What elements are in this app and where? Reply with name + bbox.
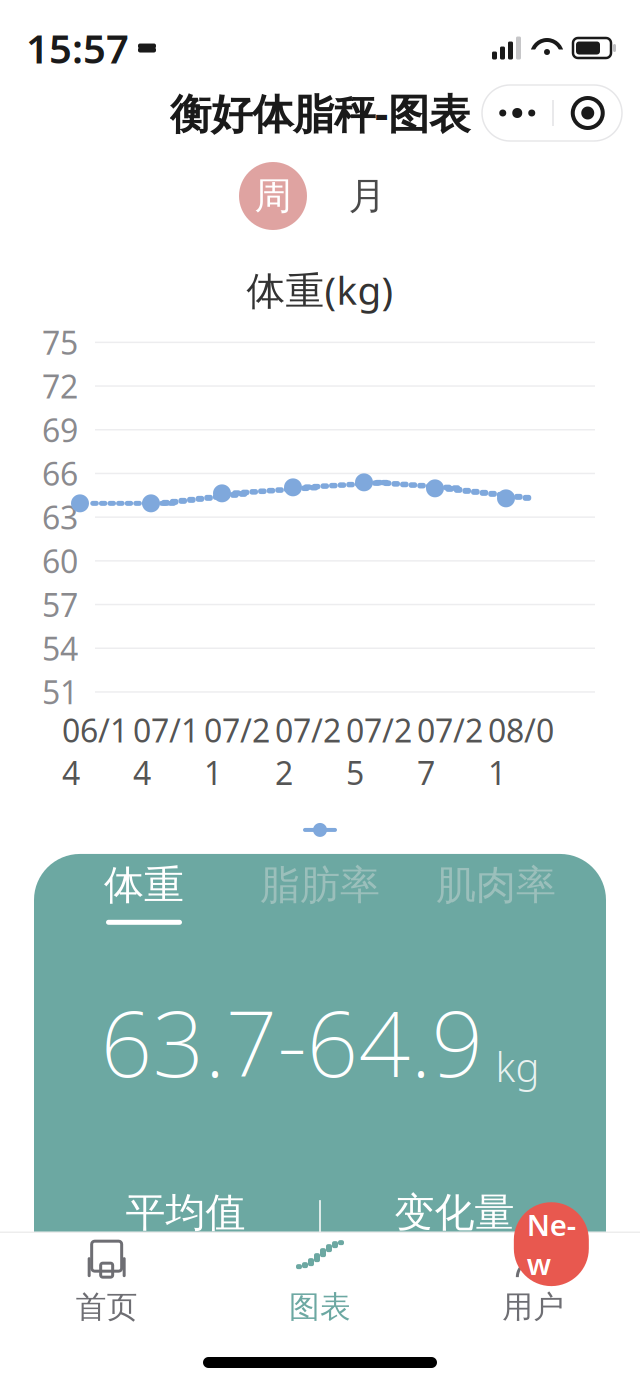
staticText: 07/14	[133, 709, 199, 794]
staticText: 月	[348, 173, 385, 219]
button[interactable]: 月	[333, 162, 401, 230]
staticText: 63	[42, 496, 78, 538]
button[interactable]: 脂肪率	[232, 862, 408, 924]
staticText: 用户	[502, 1288, 564, 1326]
staticText: 周	[254, 173, 291, 219]
staticText: New	[527, 1205, 576, 1283]
staticText: 75	[42, 321, 78, 364]
staticText: 66	[42, 452, 78, 495]
staticText: 63.7-64.9	[100, 982, 483, 1102]
staticText: 体重(kg)	[246, 264, 393, 315]
staticText: 60	[42, 540, 78, 582]
staticText: +0.35kg	[377, 1249, 531, 1304]
staticText: 变化量	[394, 1188, 514, 1237]
staticText: 体重	[104, 861, 184, 910]
button[interactable]: 周	[239, 162, 307, 230]
button[interactable]: 肌肉率	[408, 862, 584, 924]
staticText: 51	[42, 671, 78, 713]
button[interactable]: New	[427, 1233, 640, 1329]
staticText: kg	[495, 1040, 539, 1093]
staticText: 54	[42, 627, 78, 669]
staticText: 69	[42, 408, 78, 451]
button[interactable]: 体重	[56, 862, 232, 924]
staticText: 衡好体脂秤-图表	[170, 86, 470, 140]
staticText: 07/27	[417, 709, 483, 794]
button[interactable]: 胶囊按钮	[554, 85, 622, 141]
staticText: 肌肉率	[436, 861, 556, 910]
staticText: 脂肪率	[260, 861, 380, 910]
staticText: 图表	[289, 1288, 351, 1326]
staticText: 06/14	[62, 709, 128, 794]
staticText: 72	[42, 365, 78, 407]
staticText: 首页	[76, 1288, 138, 1326]
staticText: 15:57	[26, 21, 129, 74]
button[interactable]: 首页	[0, 1233, 213, 1329]
staticText: 08/01	[488, 709, 554, 794]
staticText: 64.29kg	[108, 1249, 262, 1304]
button[interactable]: 更多	[482, 85, 552, 141]
staticText: 平均值	[125, 1188, 245, 1237]
staticText: 07/25	[346, 709, 412, 794]
staticText: 57	[42, 583, 78, 626]
staticText: 07/22	[275, 709, 341, 794]
button[interactable]: 图表	[213, 1233, 427, 1329]
staticText: 07/21	[204, 709, 270, 794]
